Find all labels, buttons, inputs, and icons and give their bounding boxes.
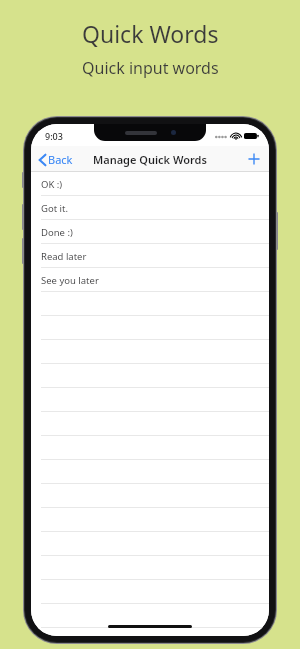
staticText: 9:03 bbox=[45, 130, 63, 142]
button[interactable]: Done :) bbox=[31, 220, 269, 244]
button[interactable]: Read later bbox=[31, 244, 269, 268]
staticText: Manage Quick Words bbox=[93, 152, 207, 167]
staticText: Done :) bbox=[41, 226, 73, 239]
button[interactable]: OK :) bbox=[31, 172, 269, 196]
staticText: Back bbox=[48, 152, 73, 167]
staticText: See you later bbox=[41, 274, 99, 287]
button[interactable]: Add quick word bbox=[239, 149, 269, 169]
staticText: Quick input words bbox=[82, 57, 219, 79]
staticText: Quick Words bbox=[82, 18, 219, 49]
button[interactable]: Back bbox=[31, 148, 81, 171]
staticText: Got it. bbox=[41, 202, 68, 215]
button[interactable]: Got it. bbox=[31, 196, 269, 220]
staticText: OK :) bbox=[41, 178, 63, 191]
button[interactable]: See you later bbox=[31, 268, 269, 292]
staticText: Read later bbox=[41, 250, 87, 263]
